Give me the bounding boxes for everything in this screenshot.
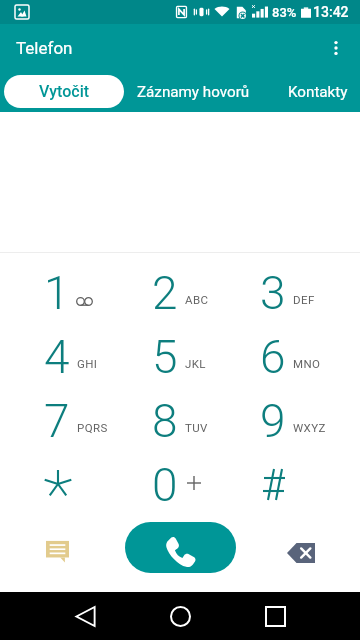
button[interactable]: Vytočit [4, 75, 124, 108]
staticText: 7 [44, 394, 70, 448]
button[interactable]: Call [125, 522, 236, 573]
staticText: JKL [185, 357, 206, 370]
button[interactable]: 1 [16, 261, 120, 325]
button[interactable]: Back [61, 592, 109, 640]
button[interactable]: 8 [124, 389, 228, 453]
staticText: 1 [44, 266, 70, 320]
button[interactable]: Kontakty [268, 72, 360, 112]
button[interactable]: Send message [36, 530, 78, 572]
staticText: 2 [152, 266, 178, 320]
button[interactable]: 5 [124, 325, 228, 389]
button[interactable]: 0 [124, 453, 228, 517]
staticText: 83% [272, 5, 297, 20]
staticText: 4 [44, 330, 70, 384]
staticText: ABC [185, 293, 209, 306]
staticText: 3 [260, 266, 286, 320]
button[interactable]: Home [156, 592, 204, 640]
button[interactable]: 2 [124, 261, 228, 325]
staticText: Telefon [16, 38, 73, 58]
button[interactable]: 7 [16, 389, 120, 453]
button[interactable] [232, 453, 336, 517]
button[interactable]: 6 [232, 325, 336, 389]
button[interactable]: More options [312, 24, 360, 72]
button[interactable]: Recent apps [251, 592, 299, 640]
staticText: MNO [293, 357, 321, 370]
staticText: Záznamy hovorů [137, 83, 250, 101]
staticText: 9 [260, 394, 286, 448]
button[interactable] [16, 453, 120, 517]
button[interactable]: 3 [232, 261, 336, 325]
button[interactable]: Záznamy hovorů [134, 72, 252, 112]
button[interactable]: 9 [232, 389, 336, 453]
staticText: 0 [152, 458, 178, 512]
staticText: DEF [293, 293, 315, 306]
staticText: Vytočit [39, 82, 90, 101]
staticText: WXYZ [293, 421, 326, 434]
staticText: 5 [152, 330, 178, 384]
staticText: TUV [185, 421, 208, 434]
staticText: GHI [77, 357, 98, 370]
staticText: 13:42 [313, 4, 349, 20]
staticText: Kontakty [288, 83, 348, 101]
staticText: PQRS [77, 421, 108, 434]
button[interactable]: Delete [280, 532, 322, 574]
button[interactable]: 4 [16, 325, 120, 389]
staticText: 8 [152, 394, 178, 448]
staticText: 6 [260, 330, 286, 384]
